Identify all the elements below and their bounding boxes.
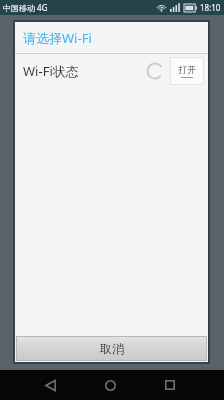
staticText: 取消 <box>100 341 124 356</box>
staticText: Wi-Fi状态 <box>23 62 79 80</box>
staticText: 请选择Wi-Fi <box>23 29 92 47</box>
button[interactable]: Back <box>35 370 65 400</box>
button[interactable]: Recent apps <box>155 370 185 400</box>
button[interactable]: Wi-Fi状态 <box>15 54 208 88</box>
staticText: 中国移动 4G <box>3 2 48 13</box>
button[interactable]: Home <box>95 370 125 400</box>
button[interactable]: 取消 <box>16 336 207 361</box>
staticText: 18:10 <box>200 2 221 13</box>
button[interactable]: 打开 <box>170 57 204 85</box>
staticText: 打开 <box>178 64 196 75</box>
